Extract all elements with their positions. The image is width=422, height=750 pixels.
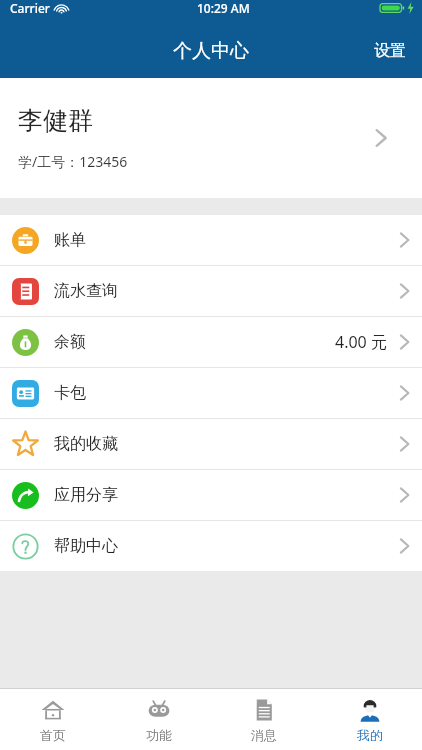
staticText: 应用分享: [54, 485, 118, 505]
button[interactable]: 卡包: [0, 368, 422, 418]
button[interactable]: 应用分享: [0, 470, 422, 520]
staticText: 个人中心: [173, 39, 249, 63]
button[interactable]: 消息: [211, 691, 316, 749]
staticText: 卡包: [54, 383, 86, 403]
button[interactable]: 我的收藏: [0, 419, 422, 469]
staticText: 10:29 AM: [197, 0, 250, 16]
staticText: 余额: [54, 332, 86, 352]
staticText: 李健群: [18, 105, 93, 136]
button[interactable]: 我的: [317, 691, 422, 749]
staticText: Carrier: [10, 0, 50, 16]
button[interactable]: 李健群: [0, 78, 422, 198]
button[interactable]: 功能: [106, 691, 211, 749]
staticText: 设置: [374, 41, 406, 61]
staticText: 功能: [146, 727, 172, 743]
button[interactable]: 流水查询: [0, 266, 422, 316]
button[interactable]: 账单: [0, 215, 422, 265]
staticText: 消息: [251, 727, 277, 743]
button[interactable]: 设置: [358, 29, 422, 73]
button[interactable]: 首页: [0, 691, 105, 749]
staticText: 账单: [54, 230, 86, 250]
staticText: 我的: [357, 727, 383, 743]
button[interactable]: 余额: [0, 317, 422, 367]
button[interactable]: 帮助中心: [0, 521, 422, 571]
staticText: 流水查询: [54, 281, 118, 301]
staticText: 4.00 元: [335, 331, 387, 353]
staticText: 首页: [40, 727, 66, 743]
staticText: 学/工号：123456: [18, 152, 128, 171]
staticText: 帮助中心: [54, 536, 118, 556]
staticText: 我的收藏: [54, 434, 118, 454]
